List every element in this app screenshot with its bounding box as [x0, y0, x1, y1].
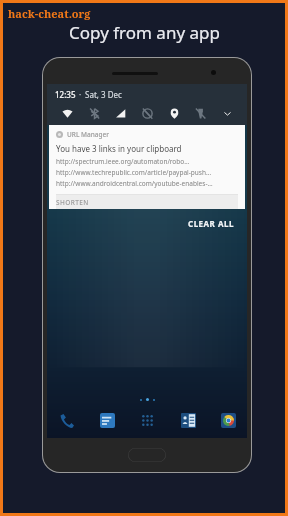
staticText: http://www.techrepublic.com/article/payp…	[56, 168, 212, 177]
button[interactable]: Bluetooth	[82, 105, 106, 121]
staticText: ·	[79, 89, 82, 100]
button[interactable]: URL Manager	[49, 125, 245, 209]
button[interactable]: Chrome	[217, 409, 239, 431]
staticText: URL Manager	[67, 130, 110, 139]
button[interactable]: Do not disturb	[135, 105, 159, 121]
button[interactable]: CLEAR ALL	[185, 216, 237, 231]
staticText: You have 3 links in your clipboard	[56, 143, 182, 154]
button[interactable]: Flashlight	[188, 105, 212, 121]
button[interactable]: Location	[162, 105, 186, 121]
button[interactable]: Phone	[55, 409, 77, 431]
button[interactable]: Wi-Fi	[55, 105, 79, 121]
staticText: Copy from any app	[69, 21, 220, 44]
button[interactable]: Messages	[96, 409, 118, 431]
staticText: Sat, 3 Dec	[85, 89, 122, 100]
staticText: http://spectrum.ieee.org/automaton/robo…	[56, 157, 190, 166]
button[interactable]: Mobile signal	[108, 105, 132, 121]
button[interactable]: Expand quick settings	[215, 105, 239, 121]
staticText: 12:35	[55, 89, 76, 100]
staticText: http://www.androidcentral.com/youtube-en…	[56, 179, 213, 188]
staticText: SHORTEN	[56, 198, 89, 207]
button[interactable]: SHORTEN	[56, 195, 238, 209]
button[interactable]: All apps	[136, 409, 158, 431]
staticText: hack-cheat.org	[8, 6, 91, 21]
staticText: CLEAR ALL	[188, 218, 234, 229]
button[interactable]: Contacts	[177, 409, 199, 431]
